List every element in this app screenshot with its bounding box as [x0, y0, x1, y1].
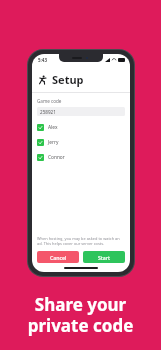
button[interactable]: Alex: [37, 124, 125, 131]
staticText: Cancel: [50, 254, 67, 261]
staticText: 258921: [40, 109, 56, 115]
staticText: Start: [98, 254, 110, 261]
staticText: Share your private code: [6, 293, 155, 337]
staticText: Game code: [37, 98, 62, 104]
button[interactable]: Start: [83, 251, 125, 263]
button[interactable]: Connor: [37, 154, 125, 161]
staticText: When hosting, you may be asked to watch …: [37, 236, 125, 246]
staticText: Alex: [48, 124, 58, 131]
button[interactable]: 258921: [37, 107, 125, 116]
staticText: 5:43: [38, 57, 47, 63]
staticText: Setup: [52, 72, 84, 87]
staticText: Connor: [48, 154, 65, 161]
button[interactable]: Cancel: [37, 251, 79, 263]
button[interactable]: Jerry: [37, 139, 125, 146]
staticText: Jerry: [48, 139, 59, 146]
